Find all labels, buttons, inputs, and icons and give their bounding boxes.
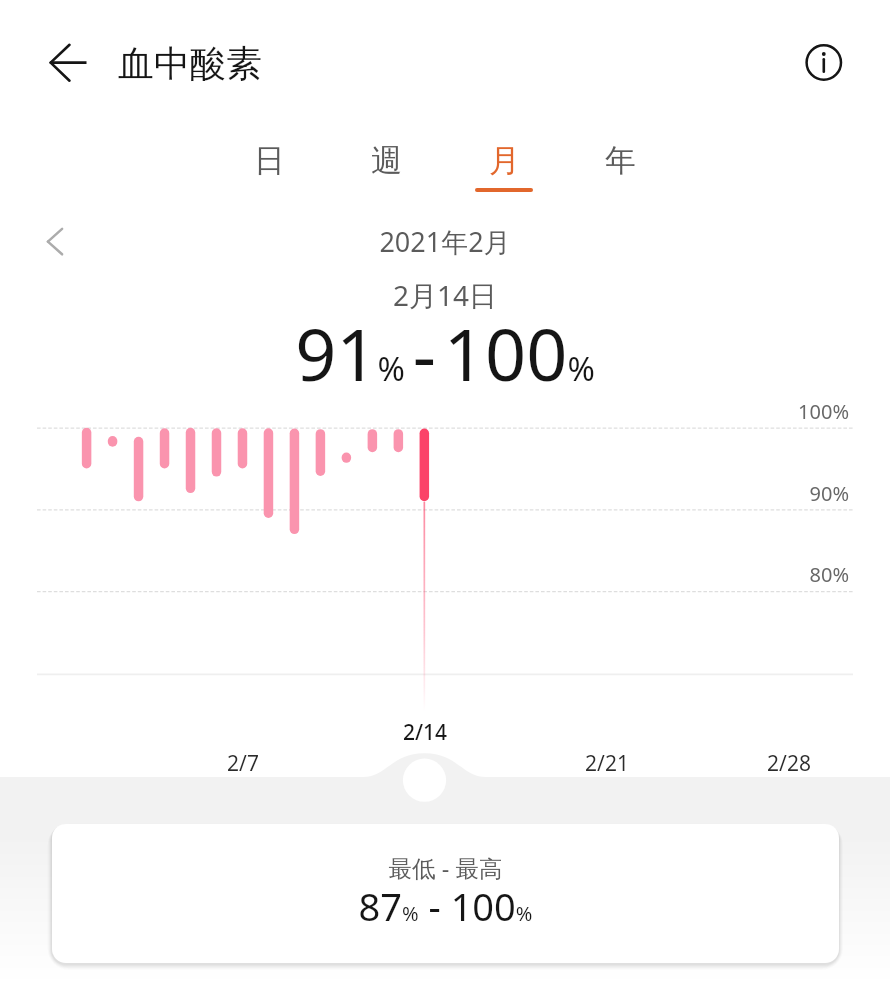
- staticText: 週: [371, 141, 402, 180]
- staticText: 80%: [0, 561, 849, 588]
- staticText: 2021年2月: [0, 223, 890, 260]
- staticText: 100%: [0, 398, 849, 425]
- button[interactable]: Info: [795, 34, 853, 92]
- button[interactable]: 日: [211, 131, 328, 199]
- button[interactable]: Back: [40, 34, 98, 92]
- staticText: 2/28: [729, 749, 849, 778]
- staticText: 2月14日: [0, 276, 890, 314]
- staticText: 90%: [0, 480, 849, 507]
- staticText: 血中酸素: [118, 41, 262, 86]
- button[interactable]: 最低 - 最高: [52, 824, 839, 963]
- staticText: 月: [489, 141, 520, 180]
- staticText: 年: [605, 141, 636, 180]
- staticText: 87% - 100%: [52, 880, 839, 932]
- staticText: 日: [254, 141, 285, 180]
- button[interactable]: 年: [562, 131, 679, 199]
- button[interactable]: Previous month: [31, 218, 79, 266]
- staticText: 2/21: [547, 749, 667, 778]
- staticText: 最低 - 最高: [52, 852, 839, 884]
- staticText: 2/7: [183, 749, 303, 778]
- staticText: 2/14: [365, 718, 485, 747]
- button[interactable]: 月: [445, 131, 562, 199]
- staticText: 91% - 100%: [0, 304, 890, 402]
- button[interactable]: 週: [328, 131, 445, 199]
